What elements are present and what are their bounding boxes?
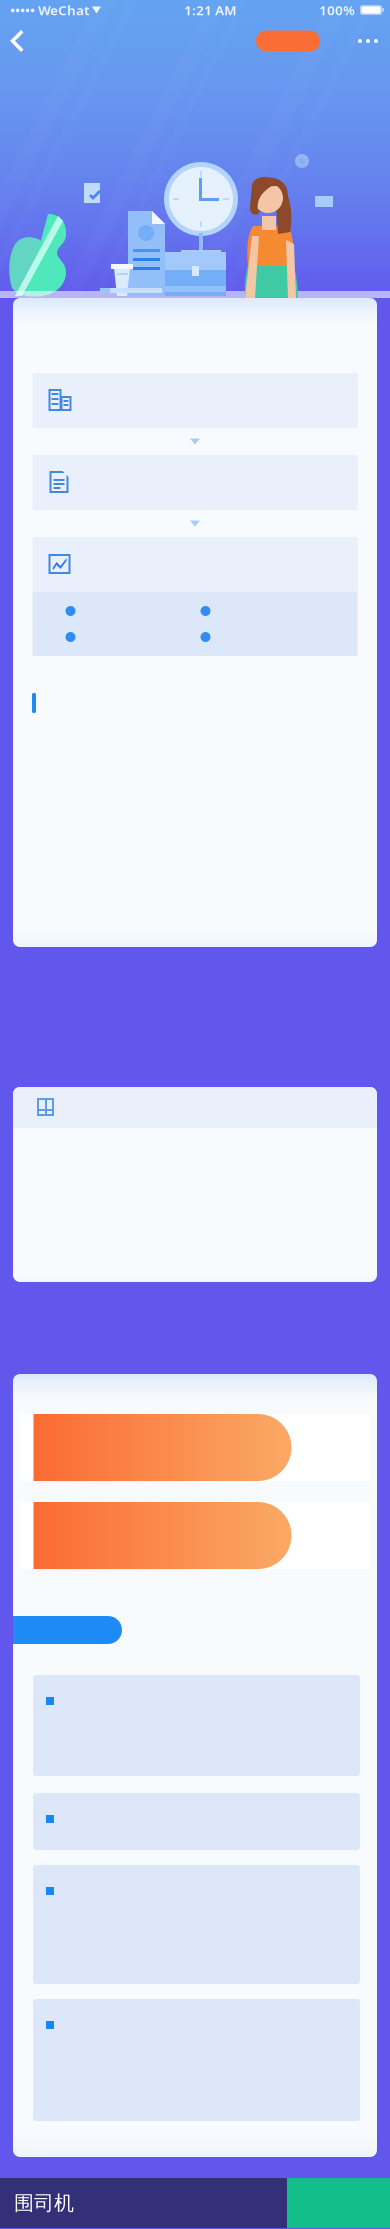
button[interactable] — [33, 1793, 360, 1850]
button[interactable] — [19, 1414, 370, 1481]
button[interactable] — [33, 1999, 360, 2121]
staticText: 1:21 AM — [184, 1, 236, 19]
button[interactable] — [32, 455, 357, 510]
button[interactable] — [19, 1502, 370, 1569]
staticText: ••••• WeChat — [10, 1, 89, 19]
staticText: 围司机 — [14, 2191, 74, 2215]
button[interactable] — [32, 537, 357, 592]
staticText: 100% — [319, 1, 355, 19]
button[interactable] — [32, 373, 357, 428]
button[interactable]: Back — [0, 20, 46, 62]
button[interactable] — [33, 1865, 360, 1984]
button[interactable]: More — [346, 20, 390, 62]
button[interactable] — [33, 1675, 360, 1776]
button[interactable] — [13, 1087, 377, 1128]
